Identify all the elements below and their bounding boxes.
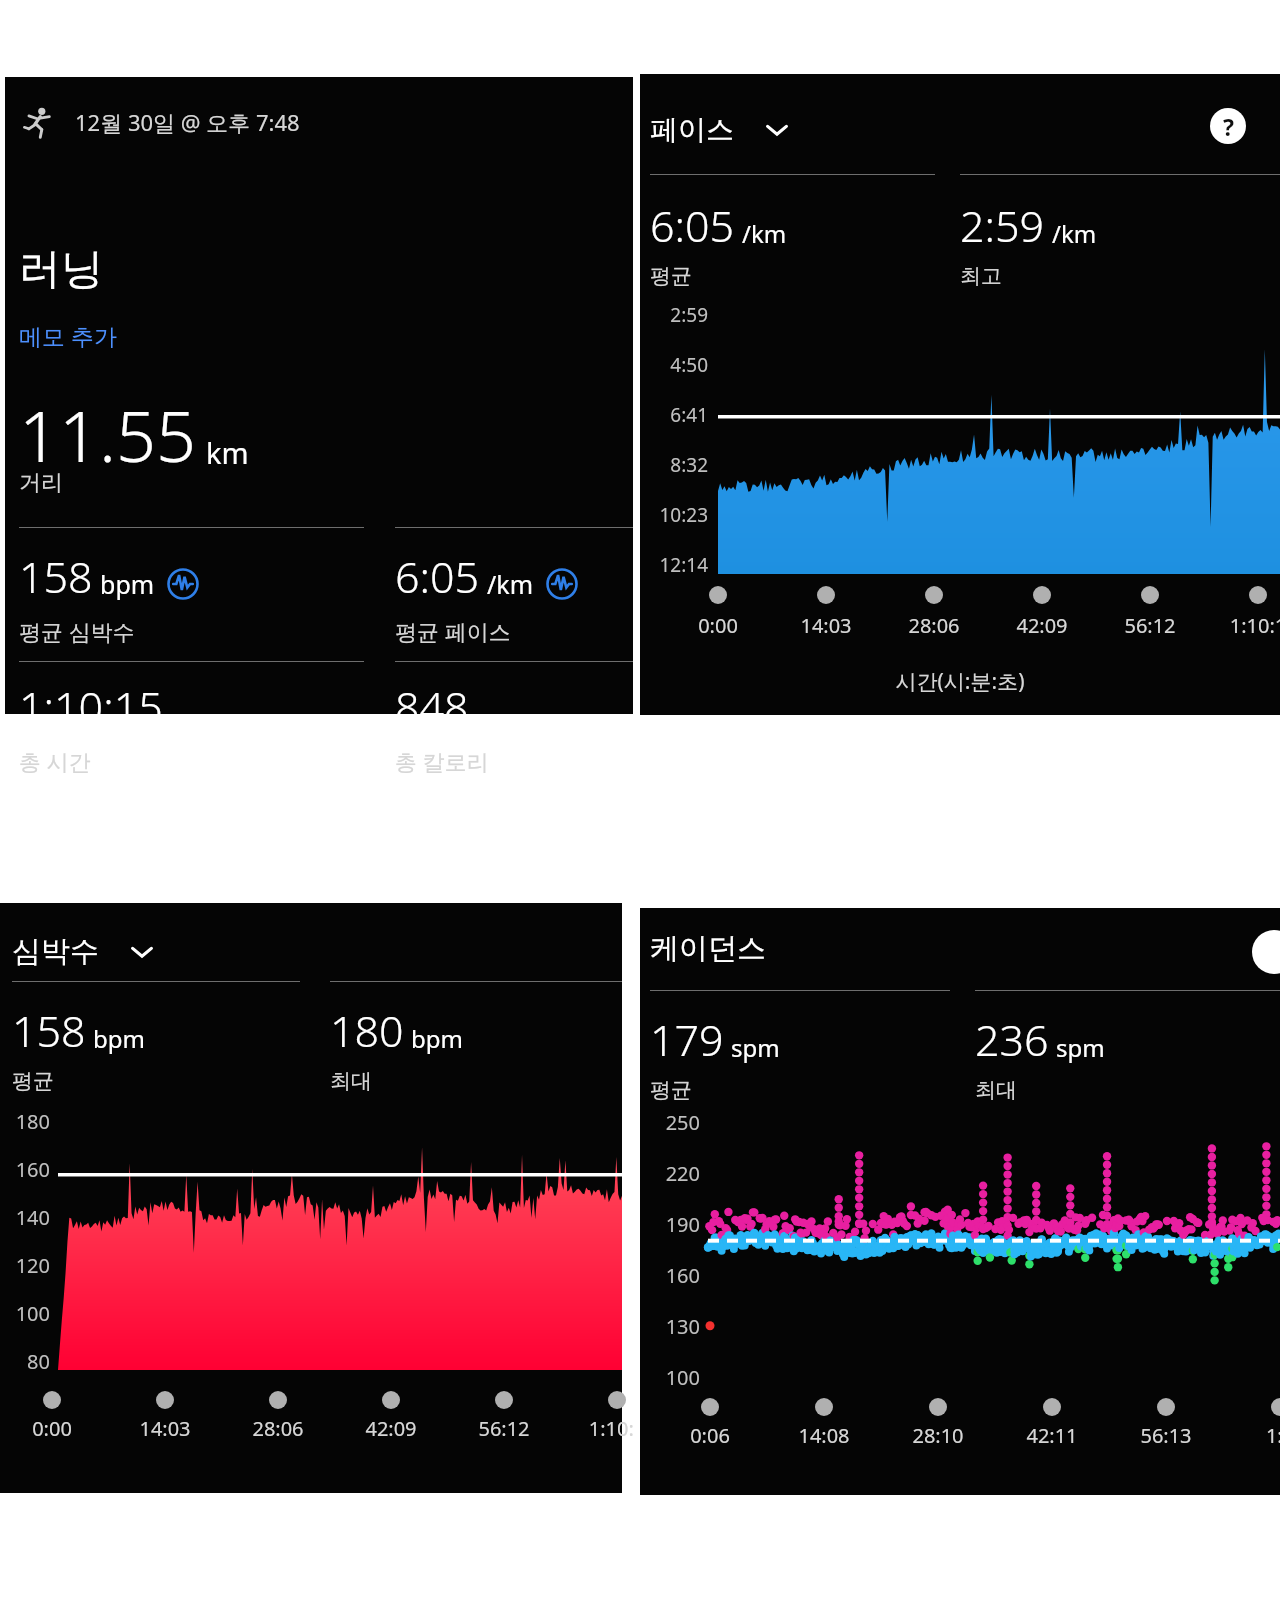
- staticText: 10:23: [646, 502, 708, 528]
- staticText: 총 칼로리: [395, 746, 489, 776]
- staticText: 42:09: [997, 612, 1087, 639]
- staticText: bpm: [411, 1022, 463, 1055]
- staticText: 80: [4, 1348, 50, 1375]
- staticText: 100: [4, 1300, 50, 1327]
- staticText: 190: [644, 1211, 700, 1238]
- staticText: 160: [4, 1156, 50, 1183]
- staticText: 28:10: [893, 1422, 983, 1449]
- staticText: 120: [4, 1252, 50, 1279]
- staticText: 거리: [19, 469, 63, 497]
- other: Running activity: [19, 103, 57, 141]
- staticText: 평균 심박수: [19, 616, 135, 646]
- button[interactable]: 케이던스: [650, 930, 766, 967]
- staticText: 케이던스: [650, 930, 766, 967]
- staticText: 평균: [12, 1068, 54, 1094]
- staticText: 최대: [330, 1068, 372, 1094]
- button[interactable]: 848: [395, 677, 735, 776]
- staticText: 0:00: [673, 612, 763, 639]
- staticText: 12:14: [646, 552, 708, 578]
- staticText: bpm: [93, 1022, 145, 1055]
- staticText: 메모 추가: [19, 320, 117, 351]
- staticText: 14:03: [781, 612, 871, 639]
- staticText: 14:03: [120, 1415, 210, 1442]
- staticText: spm: [731, 1031, 780, 1064]
- staticText: 848: [395, 677, 469, 736]
- staticText: 평균: [650, 263, 692, 289]
- staticText: 12월 30일 @ 오후 7:48: [75, 107, 300, 137]
- button[interactable]: 236: [975, 1010, 1265, 1103]
- other: Help: [1252, 930, 1280, 974]
- staticText: 250: [644, 1109, 700, 1136]
- staticText: 1:1: [1235, 1422, 1280, 1449]
- staticText: 1:10:1: [572, 1415, 662, 1442]
- staticText: 2:59: [960, 196, 1045, 255]
- staticText: 42:11: [1007, 1422, 1097, 1449]
- staticText: 220: [644, 1160, 700, 1187]
- button[interactable]: Help: [1209, 107, 1247, 145]
- staticText: 56:13: [1121, 1422, 1211, 1449]
- staticText: 42:09: [346, 1415, 436, 1442]
- staticText: 총 시간: [19, 746, 91, 776]
- staticText: 158: [12, 1001, 86, 1060]
- staticText: 러닝: [19, 243, 103, 296]
- button[interactable]: 179: [650, 1010, 940, 1103]
- staticText: ?: [1223, 111, 1234, 142]
- button[interactable]: 심박수: [12, 933, 155, 970]
- button[interactable]: 2:59: [960, 196, 1250, 289]
- staticText: /km: [487, 567, 534, 601]
- staticText: 1:10:1: [1213, 612, 1280, 639]
- staticText: 시간(시:분:초): [640, 667, 1280, 696]
- staticText: 6:05: [395, 547, 480, 606]
- staticText: 4:50: [646, 352, 708, 378]
- staticText: 180: [330, 1001, 404, 1060]
- staticText: 180: [4, 1108, 50, 1135]
- staticText: 최대: [975, 1077, 1017, 1103]
- staticText: 179: [650, 1010, 724, 1069]
- staticText: 130: [644, 1313, 700, 1340]
- staticText: 8:32: [646, 452, 708, 478]
- staticText: 160: [644, 1262, 700, 1289]
- button[interactable]: 6:05: [395, 547, 735, 646]
- staticText: 평균: [650, 1077, 692, 1103]
- staticText: 최고: [960, 263, 1002, 289]
- button[interactable]: 180: [330, 1001, 620, 1094]
- staticText: /km: [1052, 217, 1097, 250]
- button[interactable]: 158: [12, 1001, 302, 1094]
- button[interactable]: 1:10:15: [19, 677, 359, 776]
- staticText: 6:05: [650, 196, 735, 255]
- button[interactable]: 페이스: [650, 112, 790, 147]
- staticText: /km: [742, 217, 787, 250]
- staticText: 100: [644, 1364, 700, 1391]
- staticText: bpm: [100, 567, 155, 601]
- staticText: 140: [4, 1204, 50, 1231]
- staticText: 0:00: [7, 1415, 97, 1442]
- button[interactable]: 6:05: [650, 196, 940, 289]
- staticText: 6:41: [646, 402, 708, 428]
- staticText: 1:10:15: [19, 677, 163, 736]
- staticText: 56:12: [1105, 612, 1195, 639]
- staticText: 56:12: [459, 1415, 549, 1442]
- staticText: 236: [975, 1010, 1049, 1069]
- staticText: 2:59: [646, 302, 708, 328]
- staticText: 페이스: [650, 112, 734, 147]
- staticText: 28:06: [233, 1415, 323, 1442]
- staticText: 158: [19, 547, 93, 606]
- staticText: 0:06: [665, 1422, 755, 1449]
- button[interactable]: 메모 추가: [19, 320, 117, 351]
- staticText: 심박수: [12, 933, 99, 970]
- staticText: 11.55: [19, 387, 196, 482]
- staticText: 평균 페이스: [395, 616, 511, 646]
- staticText: spm: [1056, 1031, 1105, 1064]
- staticText: km: [206, 433, 249, 472]
- staticText: 14:08: [779, 1422, 869, 1449]
- button[interactable]: 158: [19, 547, 359, 646]
- staticText: 28:06: [889, 612, 979, 639]
